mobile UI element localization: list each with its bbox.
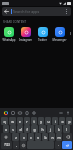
staticText: c (30, 135, 32, 140)
button[interactable]: ?123 (1, 141, 12, 149)
staticText: z (15, 135, 17, 140)
staticText: u (47, 119, 50, 124)
button[interactable]: x (20, 133, 27, 141)
button[interactable]: e (17, 117, 23, 125)
button[interactable]: Stickers (9, 109, 16, 116)
button[interactable]: r (24, 117, 30, 125)
staticText: i (55, 119, 56, 124)
button[interactable]: Settings (30, 109, 37, 116)
button[interactable]: Shift (1, 133, 11, 141)
staticText: m (57, 135, 61, 140)
button[interactable]: g (31, 125, 38, 133)
staticText: ?123 (4, 143, 10, 147)
button[interactable]: Emoji (20, 141, 26, 149)
button[interactable]: f (24, 125, 30, 133)
staticText: WhatsApp (1, 38, 17, 42)
button[interactable]: , (13, 141, 19, 149)
button[interactable]: m (56, 133, 62, 141)
button[interactable]: c (28, 133, 34, 141)
button[interactable]: Google search (2, 109, 9, 116)
staticText: j (50, 127, 51, 132)
button[interactable]: j (47, 125, 54, 133)
button[interactable]: Backspace (63, 133, 72, 141)
button[interactable]: u (45, 117, 51, 125)
button[interactable]: y (38, 117, 44, 125)
button[interactable]: Clipboard (23, 109, 30, 116)
staticText: , (16, 143, 17, 147)
button[interactable]: v (35, 133, 41, 141)
staticText: g (33, 127, 36, 132)
button[interactable]: Minimise (57, 109, 64, 116)
staticText: r (26, 119, 28, 124)
staticText: Search for apps (13, 9, 62, 14)
button[interactable]: Enter (62, 141, 72, 149)
staticText: l (66, 127, 67, 132)
staticText: . (58, 143, 59, 147)
staticText: b (44, 135, 47, 140)
button[interactable]: Microphone (64, 109, 71, 116)
button[interactable]: p (66, 117, 72, 125)
button[interactable]: l (63, 125, 70, 133)
staticText: q (3, 119, 6, 124)
button[interactable]: n (49, 133, 55, 141)
staticText: s (12, 127, 14, 132)
button[interactable]: GIF (16, 109, 23, 116)
staticText: x (23, 135, 25, 140)
button[interactable]: o (59, 117, 65, 125)
staticText: Twitter (34, 38, 51, 42)
staticText: d (19, 127, 22, 132)
button[interactable]: More options (62, 7, 71, 16)
button[interactable]: d (17, 125, 23, 133)
button[interactable]: i (52, 117, 58, 125)
staticText: o (61, 119, 64, 124)
staticText: h (41, 127, 44, 132)
staticText: y (40, 119, 42, 124)
staticText: n (51, 135, 54, 140)
staticText: p (68, 119, 71, 124)
button[interactable]: a (3, 125, 9, 133)
button[interactable]: Messenger (51, 26, 68, 43)
button[interactable]: Instagram (17, 26, 34, 43)
button[interactable]: s (10, 125, 16, 133)
button[interactable]: Back (2, 7, 11, 16)
button[interactable]: q (1, 117, 8, 125)
button[interactable]: z (12, 133, 19, 141)
staticText: t (33, 119, 35, 124)
button[interactable]: WhatsApp (1, 26, 17, 43)
staticText: Messenger (51, 38, 68, 42)
button[interactable]: t (31, 117, 37, 125)
button[interactable]: . (55, 141, 61, 149)
button[interactable]: Twitter (34, 26, 51, 43)
button[interactable]: b (42, 133, 48, 141)
staticText: SHARE CONTENT (3, 20, 27, 24)
staticText: a (5, 127, 7, 132)
staticText: w (11, 119, 14, 124)
button[interactable]: k (55, 125, 62, 133)
button[interactable]: h (39, 125, 46, 133)
button[interactable]: w (9, 117, 16, 125)
staticText: Instagram (17, 38, 34, 42)
staticText: k (58, 127, 60, 132)
staticText: e (19, 119, 21, 124)
staticText: v (37, 135, 39, 140)
staticText: f (26, 127, 28, 132)
